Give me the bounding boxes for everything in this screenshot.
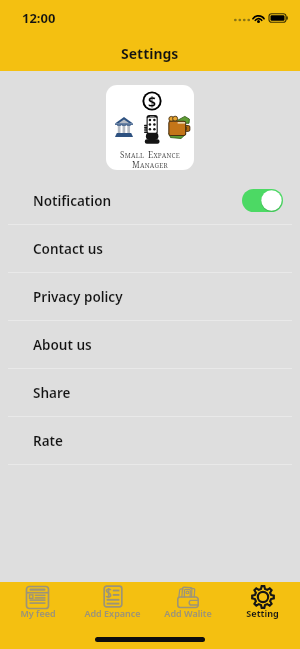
staticText: Settings: [121, 44, 179, 63]
staticText: SMALL EXPANCE: [120, 143, 180, 162]
staticText: Add Walite: [164, 607, 212, 619]
staticText: Rate: [33, 432, 63, 450]
staticText: Add Expance: [84, 607, 141, 619]
staticText: Notification: [33, 192, 112, 210]
button[interactable]: Rate: [0, 417, 300, 464]
button[interactable]: Add Expance: [75, 585, 150, 630]
button[interactable]: Setting: [225, 585, 300, 630]
staticText: Share: [33, 384, 71, 402]
staticText: My feed: [20, 607, 56, 619]
staticText: Contact us: [33, 240, 103, 258]
button[interactable]: Contact us: [0, 225, 300, 272]
button[interactable]: Share: [0, 369, 300, 416]
staticText: 12:00: [22, 9, 56, 27]
button[interactable]: Privacy policy: [0, 273, 300, 320]
button[interactable]: Notification toggle: [242, 189, 283, 212]
staticText: Setting: [246, 607, 279, 619]
button[interactable]: Notification: [0, 177, 300, 224]
button[interactable]: About us: [0, 321, 300, 368]
staticText: MANAGER: [132, 159, 168, 170]
staticText: $: [148, 92, 157, 111]
button[interactable]: Add Walite: [150, 585, 225, 630]
staticText: About us: [33, 336, 92, 354]
staticText: Privacy policy: [33, 288, 123, 306]
button[interactable]: My feed: [0, 585, 75, 630]
